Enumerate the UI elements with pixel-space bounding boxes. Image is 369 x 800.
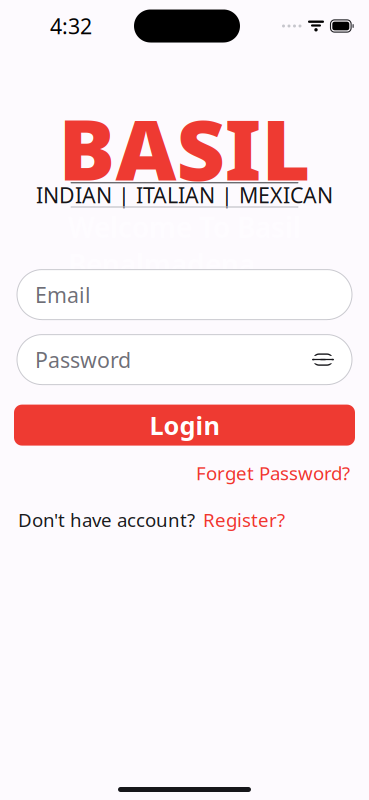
button[interactable]: Show password: [308, 345, 338, 375]
button[interactable]: Forget Password?: [194, 456, 352, 490]
staticText: Email: [35, 280, 91, 309]
button[interactable]: Email: [17, 270, 352, 320]
staticText: INDIAN | ITALIAN | MEXICAN: [36, 181, 333, 209]
staticText: BASIL: [58, 92, 310, 204]
staticText: Password: [35, 345, 131, 374]
button[interactable]: Register?: [195, 502, 293, 537]
staticText: Welcome To Basil Benalmadena: [68, 208, 301, 283]
staticText: Forget Password?: [196, 461, 350, 485]
staticText: Don't have account?: [18, 507, 195, 532]
button[interactable]: Login: [14, 405, 355, 446]
staticText: Register?: [203, 507, 285, 532]
staticText: Login: [149, 408, 219, 442]
staticText: 4:32: [50, 12, 92, 40]
